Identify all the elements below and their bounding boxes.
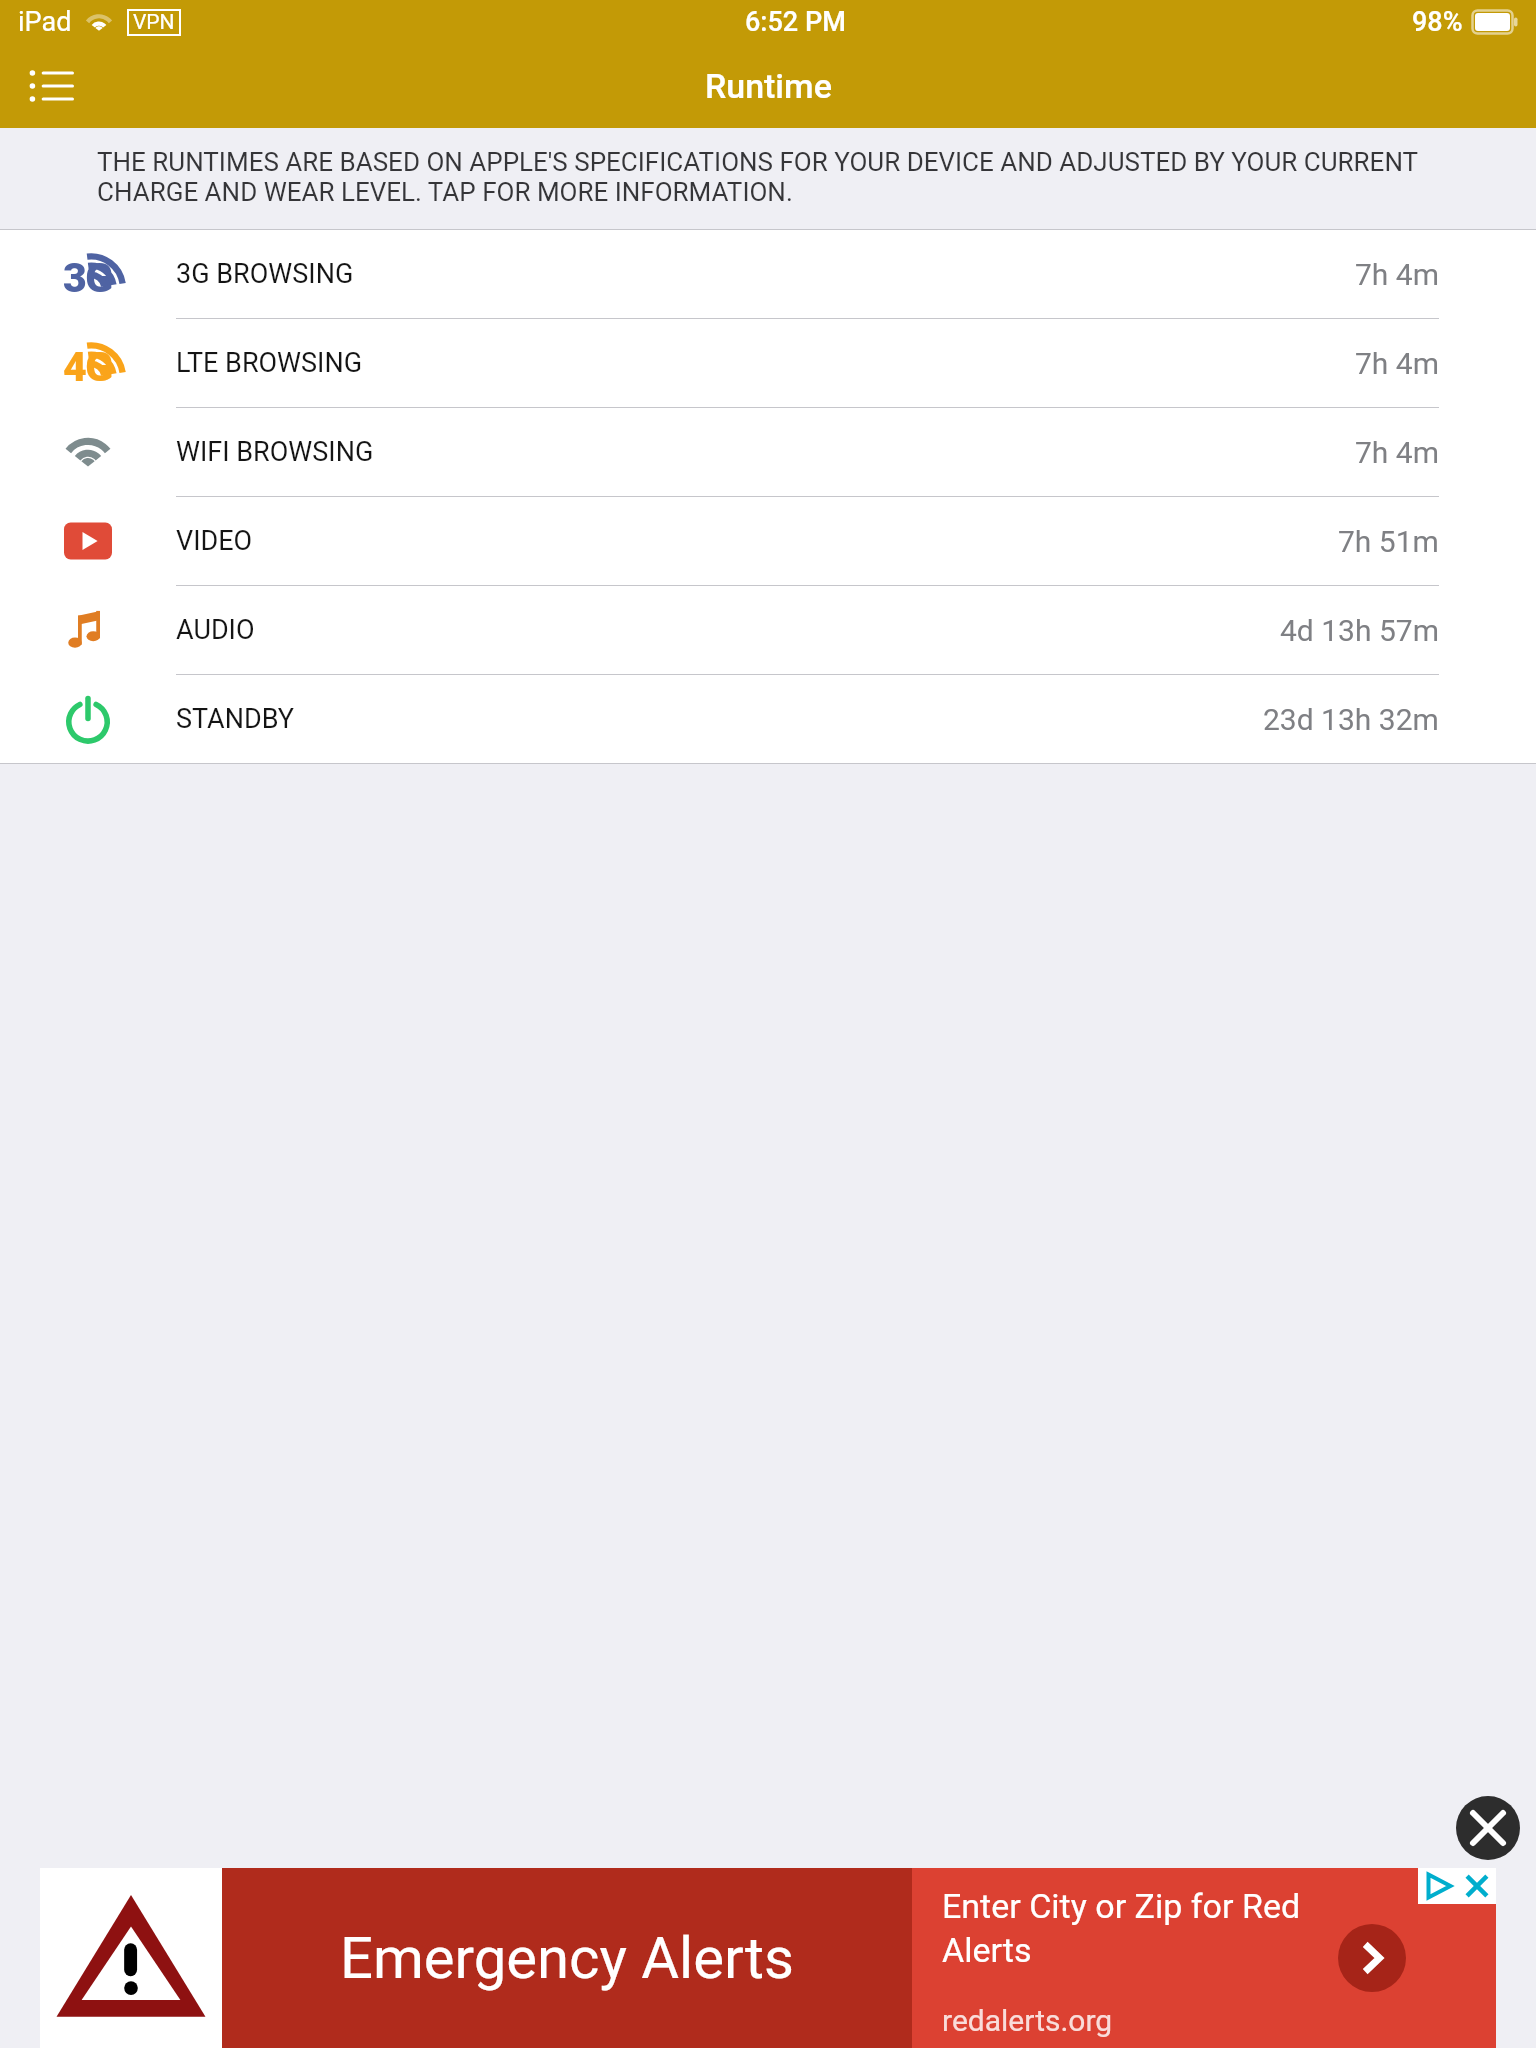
button[interactable]: THE RUNTIMES ARE BASED ON APPLE'S SPECIF… [0,128,1536,229]
button[interactable]: Menu [16,50,88,122]
button[interactable]: STANDBY [0,675,1536,763]
staticText: 7h 4m [1355,346,1439,381]
staticText: 4G [63,343,112,383]
button[interactable]: VIDEO [0,497,1536,586]
staticText: Enter City or Zip for Red Alerts [942,1886,1334,1970]
staticText: 7h 4m [1355,257,1439,292]
staticText: THE RUNTIMES ARE BASED ON APPLE'S SPECIF… [97,147,1446,207]
button[interactable]: WIFI BROWSING [0,408,1536,497]
staticText: 7h 51m [1338,524,1439,559]
button[interactable]: 4G [0,319,1536,408]
staticText: LTE BROWSING [176,347,363,379]
staticText: VIDEO [176,525,253,557]
button[interactable]: Close advertisement [1456,1796,1520,1860]
staticText: WIFI BROWSING [176,436,374,468]
staticText: Runtime [705,66,832,106]
staticText: VPN [133,10,175,35]
staticText: 98% [1412,6,1463,38]
button[interactable]: 3G [0,230,1536,319]
staticText: 6:52 PM [745,6,846,38]
staticText: 4d 13h 57m [1280,613,1439,648]
staticText: redalerts.org [942,2003,1113,2038]
staticText: iPad [18,6,72,38]
staticText: 7h 4m [1355,435,1439,470]
staticText: AUDIO [176,614,255,646]
staticText: 3G BROWSING [176,258,354,290]
staticText: 3G [63,254,112,294]
staticText: 23d 13h 32m [1263,702,1439,737]
staticText: STANDBY [176,703,295,735]
staticText: Emergency Alerts [340,1924,794,1992]
button[interactable]: Open advertisement [1338,1924,1406,1992]
button[interactable]: Emergency Alerts [40,1868,1496,2048]
button[interactable]: AUDIO [0,586,1536,675]
